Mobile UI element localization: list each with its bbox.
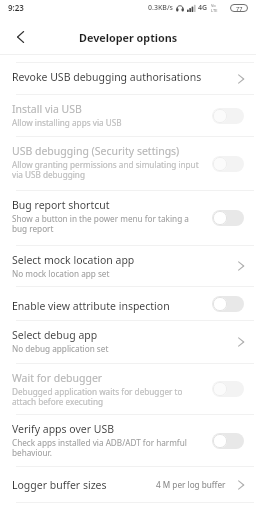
staticText: Logger buffer sizes xyxy=(12,478,107,492)
staticText: 77 xyxy=(236,5,243,12)
button[interactable]: Select mock location app xyxy=(0,246,256,286)
button[interactable] xyxy=(212,381,244,397)
staticText: Allow granting permissions and simulatin… xyxy=(12,159,199,180)
button[interactable]: Revoke USB debugging authorisations xyxy=(0,63,256,94)
button[interactable] xyxy=(212,433,244,449)
staticText: No debug application set xyxy=(12,343,109,354)
staticText: Select debug app xyxy=(12,328,98,342)
staticText: 4G xyxy=(198,3,208,13)
staticText: Select mock location app xyxy=(12,253,135,267)
staticText: Show a button in the power menu for taki… xyxy=(12,213,189,234)
button[interactable]: Enable view attribute inspection xyxy=(0,287,256,320)
button[interactable] xyxy=(212,210,244,226)
button[interactable]: Install via USB xyxy=(0,95,256,136)
button[interactable] xyxy=(212,156,244,172)
button[interactable]: Wait for debugger xyxy=(0,364,256,414)
staticText: 4 M per log buffer xyxy=(156,479,226,490)
staticText: Bug report shortcut xyxy=(12,198,110,212)
staticText: USB debugging (Security settings) xyxy=(12,144,180,158)
staticText: 0.3KB/s xyxy=(148,3,174,13)
button[interactable] xyxy=(12,29,28,45)
staticText: LTE xyxy=(211,8,218,13)
button[interactable]: Logger buffer sizes xyxy=(0,467,256,502)
staticText: Check apps installed via ADB/ADT for har… xyxy=(12,437,187,458)
button[interactable] xyxy=(212,296,244,312)
staticText: Vo xyxy=(211,3,216,8)
button[interactable]: Select debug app xyxy=(0,321,256,363)
staticText: Wait for debugger xyxy=(12,371,103,385)
staticText: Enable view attribute inspection xyxy=(12,299,170,313)
staticText: Verify apps over USB xyxy=(12,422,115,436)
button[interactable]: USB debugging (Security settings) xyxy=(0,137,256,190)
button[interactable]: Bug report shortcut xyxy=(0,191,256,245)
staticText: Revoke USB debugging authorisations xyxy=(12,70,202,84)
staticText: Allow installing apps via USB xyxy=(12,117,122,128)
button[interactable] xyxy=(212,108,244,124)
staticText: Debugged application waits for debugger … xyxy=(12,386,183,407)
staticText: No mock location app set xyxy=(12,268,110,279)
staticText: 9:23 xyxy=(8,2,24,13)
button[interactable]: Verify apps over USB xyxy=(0,415,256,466)
staticText: Developer options xyxy=(79,30,178,45)
staticText: Install via USB xyxy=(12,102,82,116)
